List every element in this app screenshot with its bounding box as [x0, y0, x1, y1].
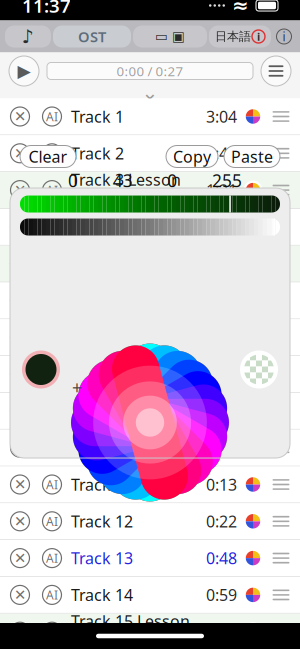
staticText: OST [78, 27, 106, 46]
staticText: AI [46, 366, 58, 382]
button[interactable]: ✕ [0, 430, 300, 466]
staticText: 0 [167, 169, 177, 192]
staticText: Track 11 [71, 474, 133, 495]
button[interactable]: ✕ [0, 282, 300, 319]
button[interactable]: ✕ [0, 172, 300, 209]
staticText: ✕ [14, 219, 26, 235]
button[interactable]: Music [5, 25, 51, 47]
staticText: 0:51 [206, 363, 237, 385]
staticText: ✕ [14, 366, 26, 382]
button[interactable]: Menu [259, 54, 293, 88]
staticText: 0:36 [206, 437, 237, 458]
button[interactable]: Devices [133, 25, 207, 47]
button[interactable]: Collapse [130, 88, 170, 97]
staticText: AI [46, 513, 58, 529]
staticText: Track 9 [71, 400, 124, 421]
staticText: i [257, 29, 260, 44]
staticText: ✕ [14, 587, 26, 603]
staticText: + [72, 376, 82, 399]
staticText: 0:48 [206, 547, 237, 569]
staticText: Track 3 Lesson 1 Acquaintance [71, 169, 195, 211]
button[interactable]: ✕ [0, 577, 300, 614]
staticText: ✕ [14, 513, 26, 530]
staticText: 0:22 [206, 511, 237, 532]
staticText: i [282, 28, 285, 44]
button[interactable]: Japanese info [209, 25, 271, 47]
button[interactable]: Scrubber [47, 62, 253, 79]
staticText: 0 [68, 169, 78, 192]
button[interactable]: ✕ [0, 393, 300, 430]
staticText: Track 8 [71, 363, 124, 385]
staticText: ▭ ▣ [155, 29, 185, 44]
button[interactable]: ✕ [0, 319, 300, 356]
staticText: ▶ [17, 61, 30, 81]
staticText: Track 13 [71, 547, 133, 569]
staticText: AI [46, 145, 58, 161]
staticText: 3:04 [206, 106, 237, 127]
staticText: AI [46, 108, 58, 124]
staticText: Paste [231, 146, 273, 167]
button[interactable]: Info [273, 25, 295, 47]
staticText: Track 4 [71, 216, 124, 237]
button[interactable]: Clear [20, 145, 76, 167]
button[interactable]: Paste [224, 145, 280, 167]
staticText: AI [46, 550, 58, 566]
button[interactable]: ✕ [0, 540, 300, 577]
staticText: Track 15 Lesson 2 [71, 610, 190, 649]
staticText: Clear [28, 146, 67, 167]
staticText: Copy [173, 146, 211, 167]
staticText: ≈ [232, 0, 249, 17]
staticText: Track 10 [71, 437, 133, 458]
button[interactable]: ✕ [0, 246, 300, 282]
staticText: AI [46, 219, 58, 235]
button[interactable]: Copy [166, 145, 218, 167]
staticText: 0:13 [206, 474, 237, 495]
staticText: ✕ [14, 550, 26, 566]
button[interactable]: ✕ [0, 98, 300, 135]
staticText: Track 1 [71, 106, 124, 127]
button[interactable]: ✕ [0, 135, 300, 172]
staticText: ♪ [22, 26, 34, 47]
staticText: AI [46, 476, 58, 492]
button[interactable]: ✕ [0, 466, 300, 503]
staticText: AI [46, 182, 58, 198]
staticText: ✕ [14, 108, 26, 125]
staticText: 43 [113, 169, 133, 192]
staticText: 日本語 [215, 29, 251, 44]
staticText: 255 [212, 169, 242, 192]
button[interactable]: ✕ [0, 209, 300, 246]
button[interactable]: ✕ [0, 356, 300, 393]
button[interactable]: OST [53, 25, 131, 47]
staticText: Track 12 [71, 511, 133, 532]
button[interactable]: ✕ [0, 614, 300, 649]
staticText: 1:21 [206, 179, 237, 201]
button[interactable]: ✕ [0, 503, 300, 540]
staticText: ✕ [14, 439, 26, 456]
staticText: 1:21 [206, 400, 237, 421]
staticText: Track 2 [71, 143, 124, 164]
staticText: 1:44 [206, 621, 237, 642]
staticText: 0:59 [206, 584, 237, 605]
staticText: 0:27 [206, 216, 237, 237]
staticText: 11:37 [22, 0, 71, 18]
staticText: ✕ [14, 145, 26, 162]
button[interactable]: Play [7, 54, 41, 88]
staticText: Track 14 [71, 584, 133, 605]
staticText: AI [46, 587, 58, 603]
